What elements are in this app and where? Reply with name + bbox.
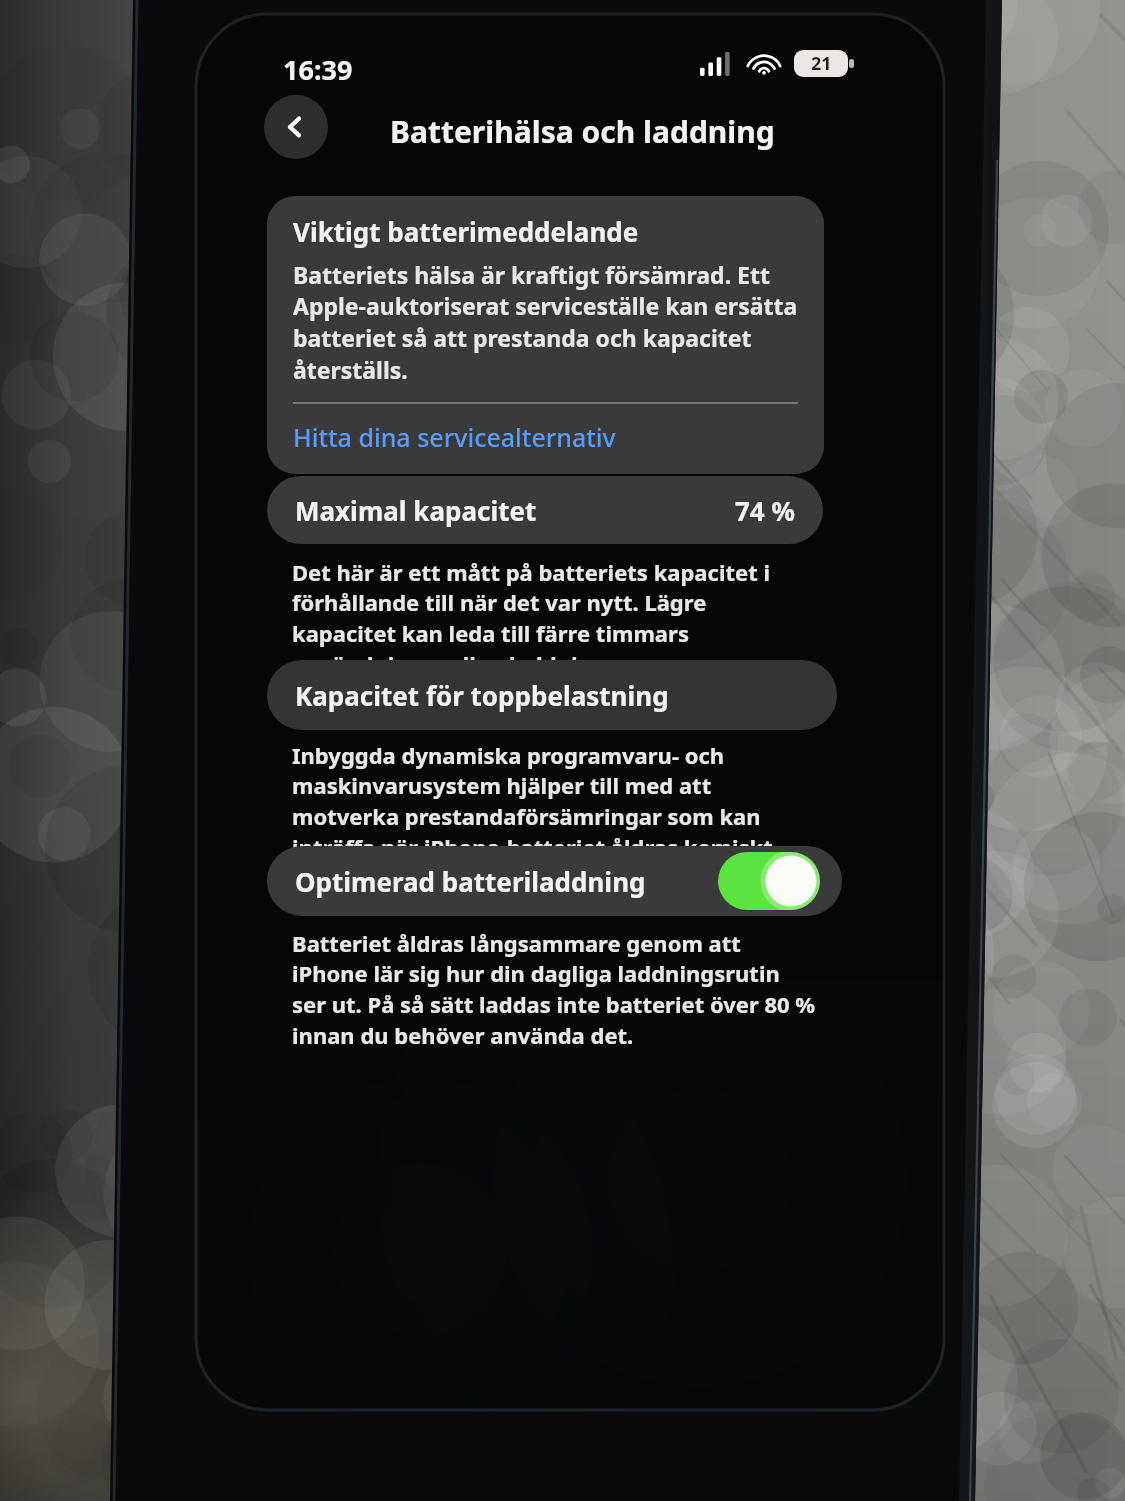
staticText: Kapacitet för toppbelastning xyxy=(295,678,669,713)
staticText: Maximal kapacitet xyxy=(295,493,537,528)
button[interactable]: Maximal kapacitet xyxy=(267,476,823,544)
button[interactable]: Optimerad batteriladdning xyxy=(267,846,842,916)
button[interactable]: Tillbaka xyxy=(264,95,328,159)
button[interactable]: Viktigt batterimeddelande xyxy=(267,196,824,474)
staticText: Batteriet åldras långsammare genom att i… xyxy=(292,928,817,1051)
staticText: 16:39 xyxy=(283,51,353,88)
staticText: Batterihälsa och laddning xyxy=(390,111,775,152)
button[interactable]: Kapacitet för toppbelastning xyxy=(267,660,837,730)
staticText: Det här är ett mått på batteriets kapaci… xyxy=(292,557,812,680)
staticText: Viktigt batterimeddelande xyxy=(293,214,639,249)
staticText: 74 % xyxy=(735,493,795,528)
staticText: Inbyggda dynamiska programvaru- och mask… xyxy=(292,740,812,863)
staticText: 21 xyxy=(811,51,832,76)
button[interactable]: Hitta dina servicealternativ xyxy=(293,420,616,454)
staticText: Optimerad batteriladdning xyxy=(295,864,646,899)
staticText: Batteriets hälsa är kraftigt försämrad. … xyxy=(293,259,798,386)
button[interactable]: Optimerad batteriladdning på xyxy=(718,852,820,910)
